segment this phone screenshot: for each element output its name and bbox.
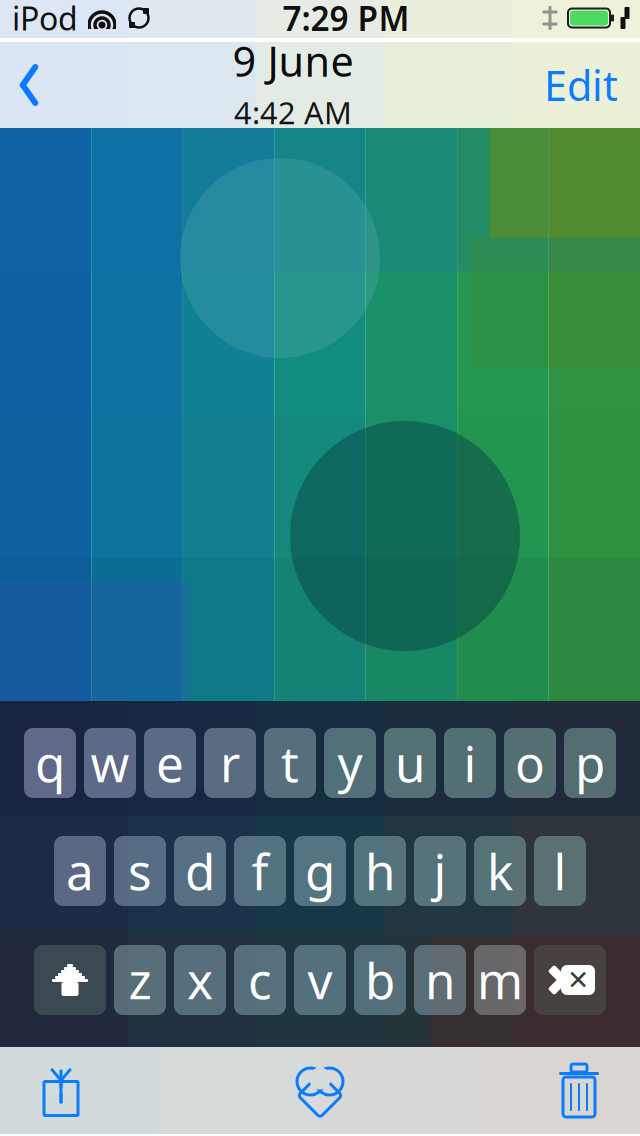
staticText: f xyxy=(251,838,268,904)
staticText: t xyxy=(281,730,299,796)
staticText: ✕ xyxy=(567,965,589,995)
staticText: z xyxy=(128,947,151,1013)
staticText: r xyxy=(220,730,240,796)
staticText: u xyxy=(395,730,425,796)
staticText: iPod xyxy=(12,0,78,39)
staticText: a xyxy=(66,838,94,904)
staticText: k xyxy=(487,838,513,904)
staticText: e xyxy=(156,730,184,796)
staticText: Edit xyxy=(544,58,618,112)
button[interactable]: z xyxy=(114,945,166,1015)
button[interactable]: r xyxy=(204,728,256,798)
button[interactable]: d xyxy=(174,836,226,906)
button[interactable]: o xyxy=(504,728,556,798)
button[interactable]: Back xyxy=(0,42,62,128)
staticText: s xyxy=(128,838,152,904)
button[interactable]: j xyxy=(414,836,466,906)
staticText: p xyxy=(575,730,605,796)
button[interactable]: g xyxy=(294,836,346,906)
staticText: y xyxy=(337,730,362,796)
button[interactable]: y xyxy=(324,728,376,798)
button[interactable]: m xyxy=(474,945,526,1015)
staticText: n xyxy=(425,947,455,1013)
button[interactable]: w xyxy=(84,728,136,798)
staticText: m xyxy=(477,947,523,1013)
button[interactable]: i xyxy=(444,728,496,798)
staticText: h xyxy=(365,838,395,904)
staticText: g xyxy=(305,838,335,904)
button[interactable]: l xyxy=(534,836,586,906)
staticText: v xyxy=(307,947,332,1013)
button[interactable]: f xyxy=(234,836,286,906)
staticText: d xyxy=(185,838,215,904)
staticText: c xyxy=(248,947,272,1013)
button[interactable]: x xyxy=(174,945,226,1015)
button[interactable]: v xyxy=(294,945,346,1015)
staticText: j xyxy=(433,838,446,904)
button[interactable]: c xyxy=(234,945,286,1015)
button[interactable]: Shift xyxy=(34,945,106,1015)
button[interactable]: p xyxy=(564,728,616,798)
button[interactable]: e xyxy=(144,728,196,798)
staticText: 4:42 AM xyxy=(234,92,352,133)
staticText: x xyxy=(187,947,213,1013)
button[interactable]: k xyxy=(474,836,526,906)
button[interactable]: Share xyxy=(6,1047,116,1134)
staticText: 9 June xyxy=(232,33,353,88)
staticText: i xyxy=(463,730,476,796)
staticText: w xyxy=(90,730,129,796)
button[interactable]: a xyxy=(54,836,106,906)
staticText: 7:29 PM xyxy=(282,0,409,40)
button[interactable]: Edit xyxy=(524,42,640,128)
button[interactable]: Delete photo xyxy=(524,1047,634,1134)
button[interactable]: b xyxy=(354,945,406,1015)
button[interactable]: Delete xyxy=(534,945,606,1015)
staticText: l xyxy=(553,838,566,904)
button[interactable]: s xyxy=(114,836,166,906)
button[interactable]: h xyxy=(354,836,406,906)
button[interactable]: Favorite xyxy=(265,1047,375,1134)
staticText: o xyxy=(515,730,545,796)
button[interactable]: q xyxy=(24,728,76,798)
button[interactable]: n xyxy=(414,945,466,1015)
staticText: q xyxy=(35,730,65,796)
button[interactable]: u xyxy=(384,728,436,798)
button[interactable]: t xyxy=(264,728,316,798)
staticText: b xyxy=(365,947,395,1013)
